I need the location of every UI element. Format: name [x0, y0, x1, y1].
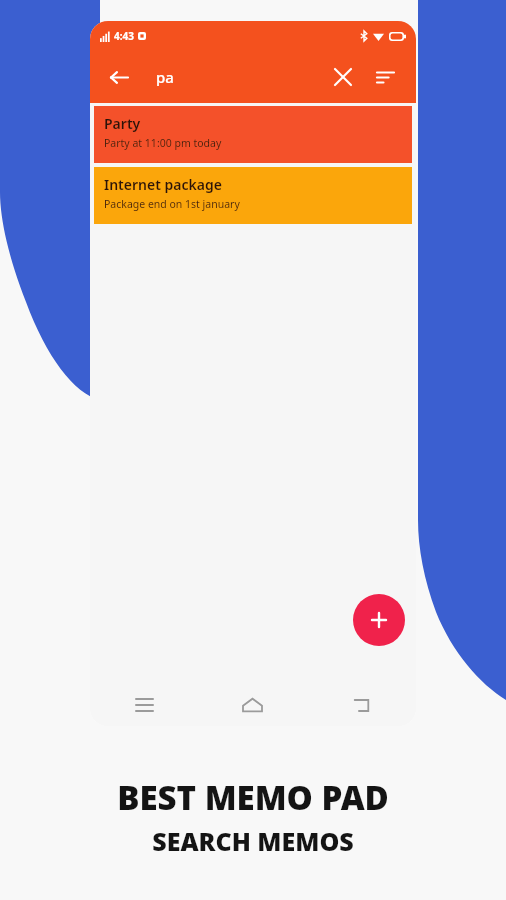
staticText: Internet package: [104, 175, 222, 194]
button[interactable]: Party: [94, 106, 412, 163]
button[interactable]: Back: [98, 57, 138, 97]
button[interactable]: Sort: [364, 56, 406, 98]
button[interactable]: Add memo: [353, 594, 405, 646]
staticText: Party at 11:00 pm today: [104, 136, 222, 150]
staticText: pa: [156, 67, 174, 87]
button[interactable]: Recents: [90, 684, 198, 726]
staticText: BEST MEMO PAD: [117, 775, 389, 820]
staticText: SEARCH MEMOS: [152, 824, 354, 858]
button[interactable]: Internet package: [94, 167, 412, 224]
staticText: 4:43: [114, 29, 134, 43]
button[interactable]: Home: [198, 684, 307, 726]
staticText: Package end on 1st january: [104, 197, 240, 211]
button[interactable]: Clear search: [322, 56, 364, 98]
staticText: Party: [104, 114, 141, 133]
button[interactable]: Back: [307, 684, 416, 726]
